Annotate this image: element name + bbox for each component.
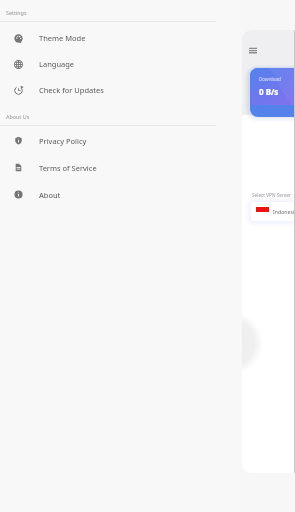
button[interactable]: Language [0,51,241,77]
staticText: Settings [6,9,27,16]
button[interactable]: Terms of Service [0,154,241,181]
staticText: Download [259,76,281,82]
staticText: Check for Updates [39,85,104,95]
staticText: About [39,190,61,200]
button[interactable]: Privacy Policy [0,127,241,154]
button[interactable]: Theme Mode [0,25,241,51]
staticText: 0 B/s [259,86,279,97]
staticText: About Us [6,113,30,120]
staticText: Select VPN Server [252,192,291,198]
button[interactable]: Check for Updates [0,77,241,103]
staticText: Language [39,59,75,69]
button[interactable]: About [0,181,241,208]
staticText: Terms of Service [39,163,97,173]
button[interactable]: Download [250,68,294,117]
staticText: Privacy Policy [39,136,87,146]
button[interactable]: Open navigation menu [247,45,259,57]
button[interactable]: Indonesia [251,202,294,221]
staticText: Theme Mode [39,33,86,43]
staticText: Indonesia [273,208,294,215]
